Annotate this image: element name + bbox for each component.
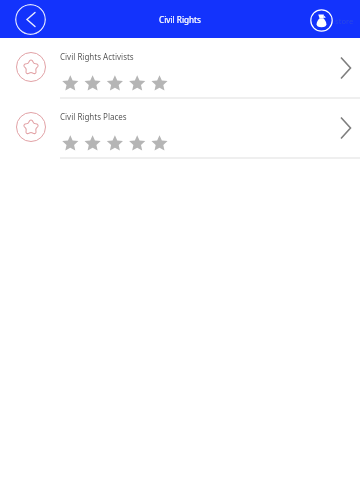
staticText: Civil Rights [159, 14, 201, 25]
staticText: store [335, 16, 354, 26]
button[interactable]: Civil Rights Places [0, 98, 360, 158]
button[interactable]: Civil Rights Activists [0, 38, 360, 98]
button[interactable]: Store [310, 9, 354, 32]
button[interactable]: Back [15, 4, 46, 35]
staticText: Civil Rights Places [60, 111, 127, 122]
staticText: Civil Rights Activists [60, 51, 134, 62]
